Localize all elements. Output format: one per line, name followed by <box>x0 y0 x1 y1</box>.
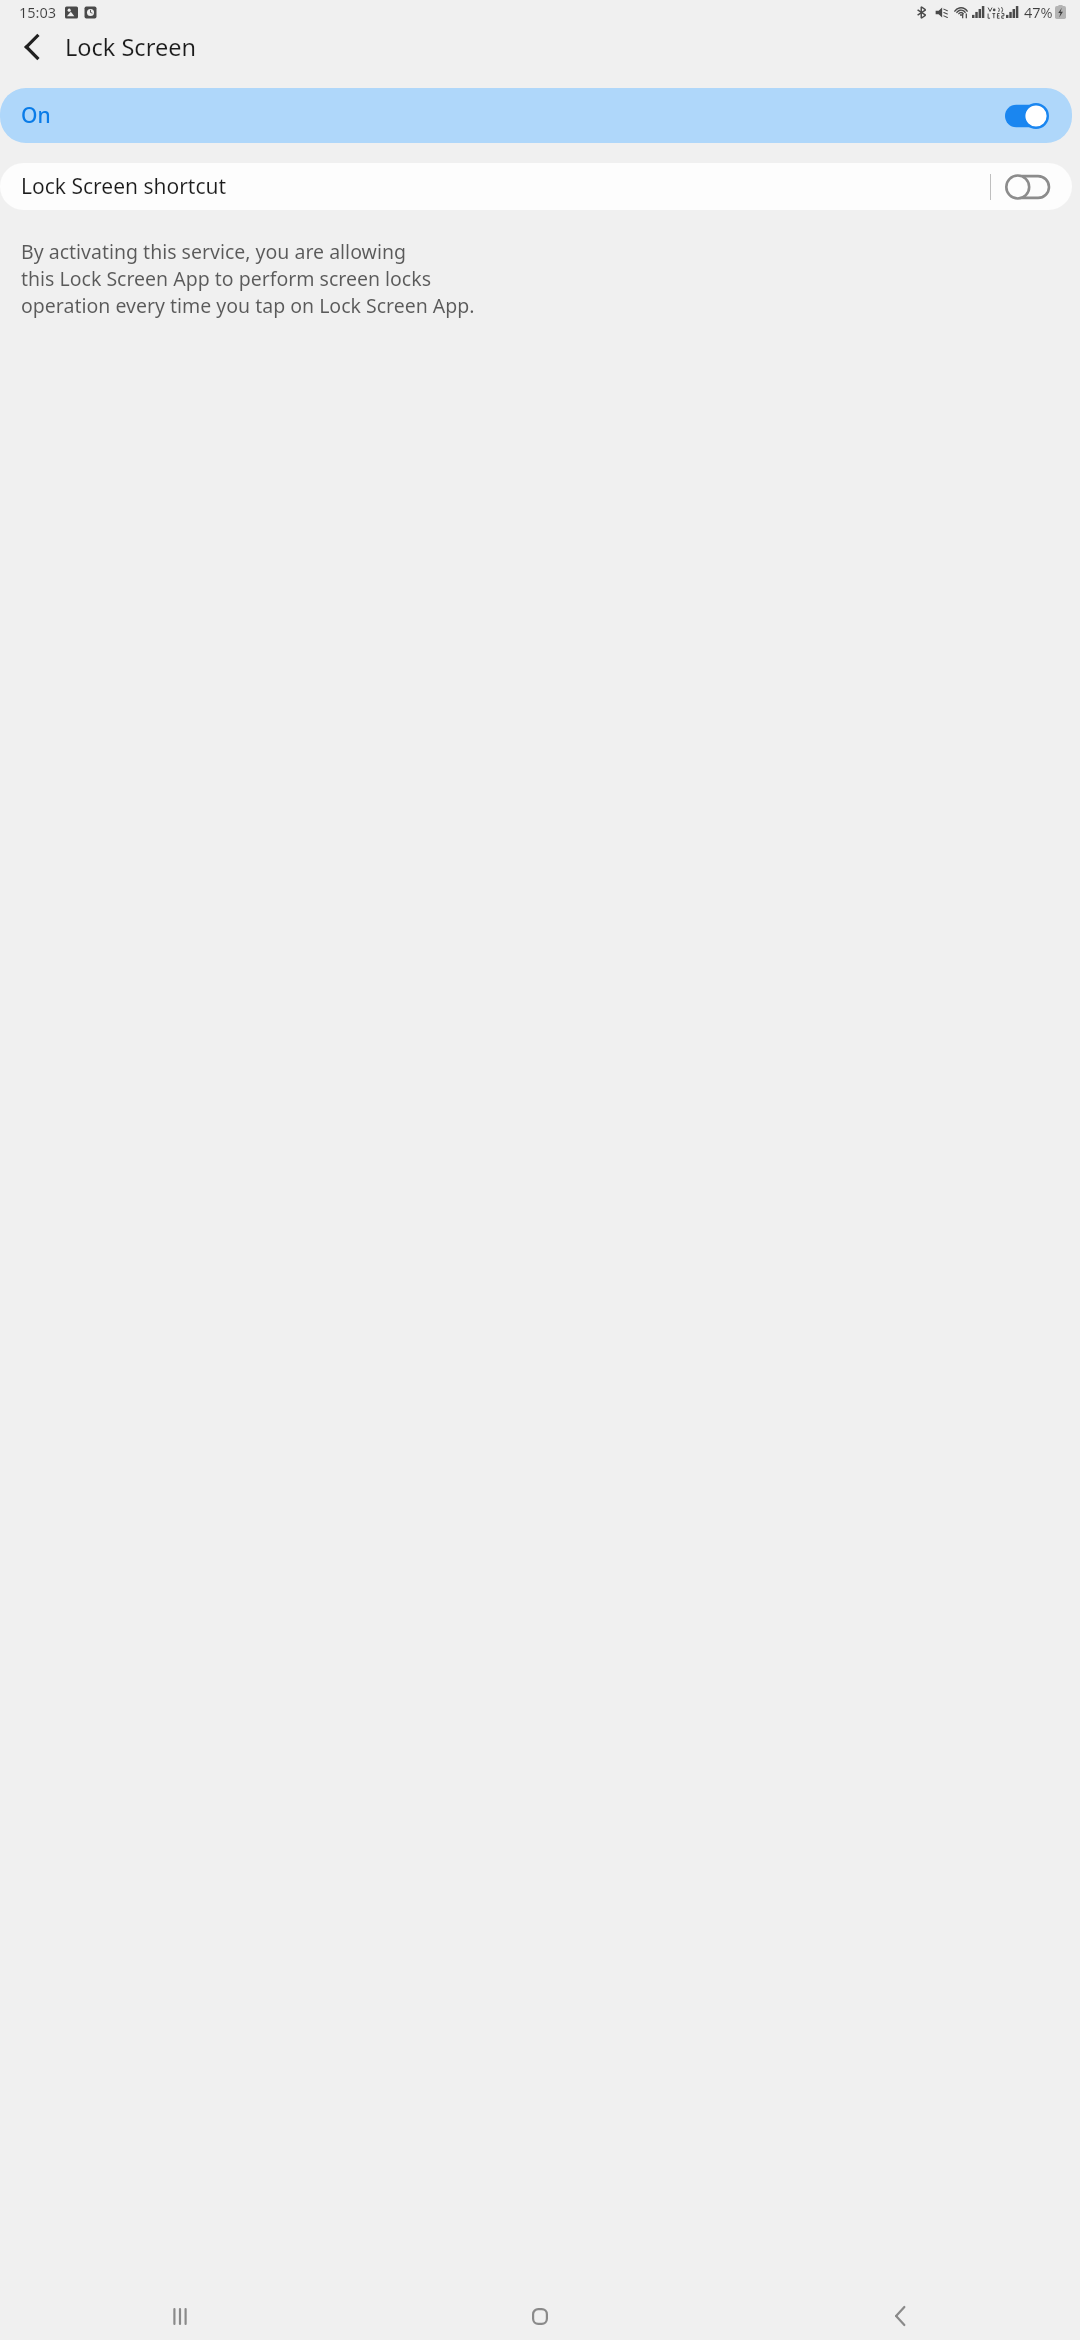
button[interactable]: On <box>0 88 1072 143</box>
button[interactable]: Back <box>10 25 54 69</box>
staticText: Lock Screen shortcut <box>21 172 227 201</box>
button[interactable]: Back <box>720 2292 1080 2340</box>
staticText: 47% <box>1024 2 1053 22</box>
button[interactable]: Lock Screen shortcut toggle <box>1005 174 1049 200</box>
staticText: Lock Screen <box>65 31 196 63</box>
staticText: this Lock Screen App to perform screen l… <box>21 265 431 292</box>
staticText: On <box>21 101 51 130</box>
button[interactable]: Lock Screen shortcut <box>0 163 1072 210</box>
button[interactable]: Recent apps <box>0 2292 360 2340</box>
staticText: 15:03 <box>19 2 57 22</box>
staticText: operation every time you tap on Lock Scr… <box>21 292 475 319</box>
staticText: By activating this service, you are allo… <box>21 238 406 265</box>
button[interactable]: Home <box>360 2292 720 2340</box>
